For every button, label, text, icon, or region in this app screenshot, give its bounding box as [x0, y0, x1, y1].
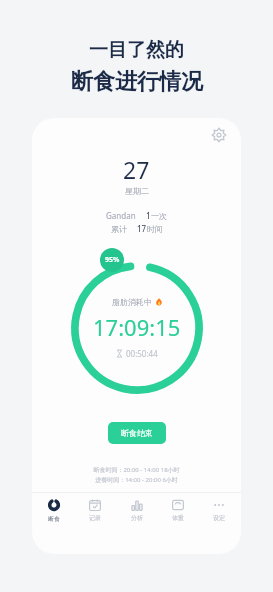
- staticText: 断食时间：20:00 - 14:00 18小时: [93, 466, 180, 474]
- staticText: 断食: [48, 515, 60, 523]
- button[interactable]: 记录: [76, 497, 114, 524]
- staticText: 17:09:15: [93, 312, 181, 342]
- button[interactable]: 分析: [118, 497, 156, 524]
- staticText: 00:50:44: [126, 348, 158, 359]
- button[interactable]: Settings: [207, 123, 231, 147]
- staticText: 脂肪消耗中: [112, 297, 152, 307]
- staticText: 星期二: [125, 186, 149, 196]
- staticText: 断食结束: [121, 428, 153, 438]
- staticText: 体重: [172, 514, 184, 522]
- staticText: 分析: [131, 514, 143, 522]
- button[interactable]: 设定: [200, 497, 238, 524]
- staticText: 1: [146, 210, 151, 221]
- staticText: 一次: [151, 211, 167, 221]
- staticText: 时间: [147, 224, 163, 234]
- staticText: 设定: [213, 514, 225, 522]
- button[interactable]: 体重: [159, 497, 197, 524]
- button[interactable]: 断食: [35, 496, 73, 525]
- staticText: 进餐时间：14:00 - 20:00 6小时: [95, 476, 178, 484]
- staticText: 27: [123, 154, 150, 185]
- staticText: Gandan: [106, 210, 136, 221]
- button[interactable]: 断食结束: [108, 422, 166, 444]
- staticText: 95%: [105, 255, 120, 265]
- staticText: 断食进行情况: [71, 68, 203, 96]
- staticText: 17: [137, 223, 147, 234]
- staticText: 累计: [111, 224, 127, 234]
- staticText: 记录: [89, 514, 101, 522]
- staticText: 一目了然的: [89, 38, 184, 62]
